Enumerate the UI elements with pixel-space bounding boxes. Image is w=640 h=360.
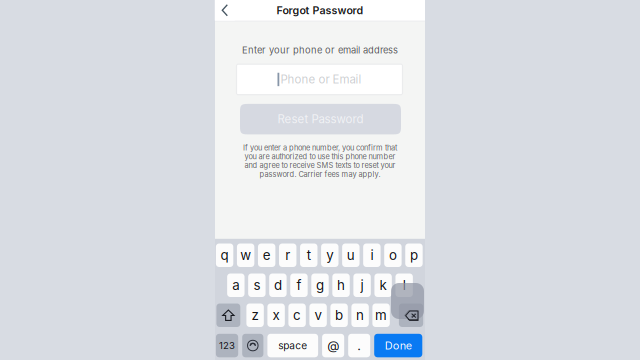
staticText: x bbox=[273, 307, 280, 323]
button[interactable]: Delete bbox=[399, 303, 423, 327]
staticText: . bbox=[357, 338, 361, 353]
staticText: j bbox=[361, 277, 364, 293]
staticText: u bbox=[347, 247, 355, 263]
staticText: g bbox=[316, 277, 324, 293]
button[interactable]: 123 bbox=[216, 334, 238, 357]
staticText: Done bbox=[385, 339, 412, 352]
staticText: q bbox=[221, 247, 229, 263]
staticText: If you enter a phone number, you confirm… bbox=[243, 143, 397, 152]
button[interactable]: f bbox=[290, 273, 308, 297]
button[interactable]: k bbox=[374, 273, 392, 297]
button[interactable]: q bbox=[216, 243, 233, 267]
button[interactable]: Emoji keyboard bbox=[242, 334, 263, 357]
button[interactable]: @ bbox=[322, 334, 344, 357]
button[interactable]: Back bbox=[215, 0, 235, 20]
staticText: m bbox=[375, 307, 387, 323]
button[interactable]: c bbox=[288, 303, 306, 327]
button[interactable]: . bbox=[348, 334, 370, 357]
button[interactable]: d bbox=[269, 273, 287, 297]
staticText: Enter your phone or email address bbox=[242, 44, 398, 56]
button[interactable]: y bbox=[321, 243, 338, 267]
button[interactable]: g bbox=[311, 273, 329, 297]
staticText: n bbox=[356, 307, 364, 323]
button[interactable]: h bbox=[332, 273, 350, 297]
button[interactable]: x bbox=[267, 303, 285, 327]
staticText: f bbox=[296, 277, 301, 293]
button[interactable]: l bbox=[395, 273, 413, 297]
button[interactable]: i bbox=[363, 243, 381, 267]
staticText: Reset Password bbox=[277, 112, 363, 126]
staticText: h bbox=[337, 277, 345, 293]
staticText: i bbox=[370, 247, 373, 263]
button[interactable]: r bbox=[279, 243, 296, 267]
staticText: r bbox=[285, 247, 290, 263]
button[interactable]: v bbox=[309, 303, 327, 327]
staticText: d bbox=[274, 277, 282, 293]
staticText: o bbox=[389, 247, 397, 263]
staticText: c bbox=[293, 307, 301, 323]
staticText: @ bbox=[327, 338, 339, 353]
staticText: 123 bbox=[219, 340, 235, 351]
button[interactable]: t bbox=[300, 243, 317, 267]
button[interactable]: e bbox=[258, 243, 275, 267]
staticText: you are authorized to use this phone num… bbox=[244, 152, 395, 161]
button[interactable]: p bbox=[405, 243, 423, 267]
button[interactable]: a bbox=[227, 273, 244, 297]
button[interactable]: Reset Password bbox=[240, 104, 401, 134]
button[interactable]: o bbox=[384, 243, 402, 267]
button[interactable]: s bbox=[248, 273, 266, 297]
staticText: Forgot Password bbox=[276, 4, 363, 17]
staticText: a bbox=[232, 277, 239, 293]
staticText: and agree to receive SMS texts to reset … bbox=[244, 161, 395, 170]
staticText: z bbox=[252, 307, 259, 323]
staticText: y bbox=[326, 247, 333, 263]
button[interactable]: b bbox=[330, 303, 348, 327]
staticText: e bbox=[263, 247, 271, 263]
staticText: l bbox=[403, 277, 406, 293]
staticText: t bbox=[307, 247, 311, 263]
button[interactable]: w bbox=[237, 243, 254, 267]
staticText: Phone or Email bbox=[280, 72, 361, 86]
staticText: password. Carrier fees may apply. bbox=[259, 170, 380, 179]
button[interactable]: space bbox=[267, 334, 318, 357]
button[interactable]: Shift bbox=[216, 303, 240, 327]
button[interactable]: Done bbox=[374, 334, 422, 357]
button[interactable]: m bbox=[372, 303, 390, 327]
button[interactable]: u bbox=[342, 243, 359, 267]
staticText: k bbox=[380, 277, 387, 293]
staticText: w bbox=[240, 247, 251, 263]
button[interactable]: n bbox=[351, 303, 369, 327]
staticText: space bbox=[278, 339, 307, 352]
staticText: s bbox=[253, 277, 260, 293]
staticText: p bbox=[410, 247, 418, 263]
staticText: b bbox=[335, 307, 343, 323]
staticText: v bbox=[315, 307, 322, 323]
button[interactable]: z bbox=[246, 303, 264, 327]
button[interactable]: j bbox=[353, 273, 371, 297]
